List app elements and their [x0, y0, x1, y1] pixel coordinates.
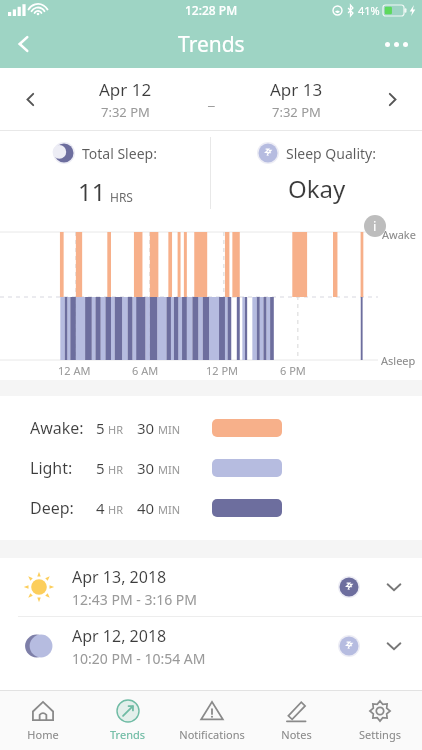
staticText: Deep:: [30, 497, 74, 519]
staticText: Total Sleep:: [82, 144, 157, 163]
button[interactable]: Previous: [0, 68, 60, 130]
staticText: 6 PM: [280, 363, 306, 378]
staticText: 40: [137, 498, 155, 518]
staticText: Notes: [281, 727, 312, 742]
staticText: 12 AM: [58, 363, 91, 378]
button[interactable]: Info: [364, 215, 386, 237]
button[interactable]: Awake:: [0, 408, 422, 448]
staticText: HR: [108, 462, 123, 477]
staticText: Light:: [30, 457, 73, 479]
staticText: Awake:: [30, 417, 84, 439]
button[interactable]: Notes: [254, 691, 338, 750]
staticText: 30: [137, 418, 155, 438]
button[interactable]: More options: [370, 20, 422, 68]
staticText: Sleep Quality:: [286, 144, 376, 163]
staticText: 5: [96, 458, 105, 478]
staticText: MIN: [158, 422, 181, 437]
staticText: 12:43 PM - 3:16 PM: [72, 590, 197, 609]
staticText: Settings: [359, 727, 401, 742]
staticText: Apr 12, 2018: [72, 625, 167, 647]
staticText: 41%: [358, 3, 380, 18]
staticText: Trends: [178, 30, 245, 59]
staticText: 12 PM: [206, 363, 239, 378]
staticText: 11: [78, 175, 106, 208]
staticText: Okay: [288, 172, 346, 205]
button[interactable]: Apr 13, 2018: [0, 558, 422, 616]
staticText: HR: [108, 502, 123, 517]
staticText: 5: [96, 418, 105, 438]
staticText: _: [208, 89, 215, 109]
staticText: Notifications: [179, 727, 245, 742]
staticText: i: [373, 217, 377, 235]
button[interactable]: Light:: [0, 448, 422, 488]
staticText: 7:32 PM: [272, 103, 321, 121]
staticText: 6 AM: [132, 363, 159, 378]
staticText: Trends: [110, 727, 145, 742]
button[interactable]: Apr 12, 2018: [0, 617, 422, 675]
button[interactable]: Expand: [374, 567, 414, 607]
button[interactable]: Trends: [85, 691, 170, 750]
staticText: Apr 13, 2018: [72, 566, 167, 588]
button[interactable]: Next: [362, 68, 422, 130]
button[interactable]: Deep:: [0, 488, 422, 528]
staticText: HR: [108, 422, 123, 437]
button[interactable]: Notifications: [170, 691, 254, 750]
staticText: HRS: [110, 189, 133, 205]
staticText: Awake: [382, 227, 416, 242]
staticText: Apr 12: [99, 78, 152, 101]
staticText: Apr 13: [270, 78, 323, 101]
staticText: 7:32 PM: [101, 103, 150, 121]
button[interactable]: Expand: [374, 626, 414, 666]
button[interactable]: Back: [0, 20, 48, 68]
button[interactable]: Settings: [338, 691, 422, 750]
staticText: Home: [27, 727, 59, 742]
staticText: 12:28 PM: [185, 2, 238, 18]
staticText: 30: [137, 458, 155, 478]
staticText: Asleep: [381, 353, 416, 368]
staticText: 10:20 PM - 10:54 AM: [72, 649, 206, 668]
staticText: MIN: [158, 502, 181, 517]
staticText: MIN: [158, 462, 181, 477]
staticText: 4: [96, 498, 105, 518]
button[interactable]: Home: [0, 691, 85, 750]
